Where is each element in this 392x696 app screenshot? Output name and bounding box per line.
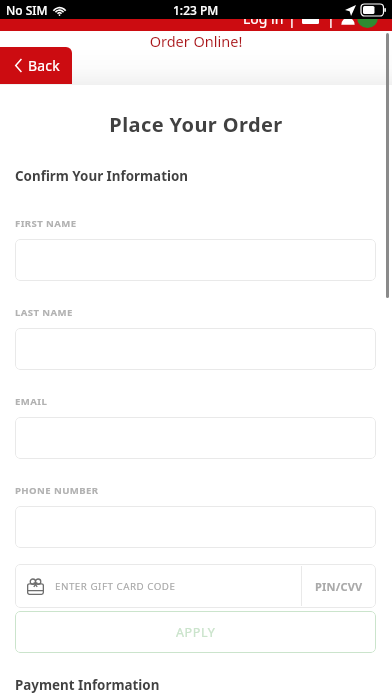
staticText: FIRST NAME (15, 217, 77, 230)
staticText: | (288, 9, 296, 28)
button[interactable]: PIN/CVV (301, 564, 376, 608)
staticText: LAST NAME (15, 306, 73, 319)
button[interactable]: Account (341, 10, 355, 24)
staticText: PIN/CVV (315, 579, 363, 594)
button[interactable]: LAST NAME (15, 328, 376, 370)
button[interactable]: Shopping cart (302, 10, 319, 24)
staticText: APPLY (176, 624, 216, 641)
button[interactable]: PHONE NUMBER (15, 506, 376, 548)
staticText: EMAIL (15, 395, 48, 408)
button[interactable]: Menu (357, 7, 378, 28)
staticText: No SIM (6, 2, 48, 18)
staticText: Place Your Order (0, 111, 392, 138)
button[interactable]: ENTER GIFT CARD CODE (15, 564, 301, 608)
staticText: 1:23 PM (173, 2, 219, 18)
staticText: Payment Information (15, 676, 160, 694)
staticText: PHONE NUMBER (15, 484, 99, 497)
button[interactable]: FIRST NAME (15, 239, 376, 281)
staticText: Back (28, 56, 60, 75)
button[interactable]: EMAIL (15, 417, 376, 459)
staticText: ENTER GIFT CARD CODE (55, 580, 176, 593)
staticText: | (327, 9, 335, 28)
staticText: Order Online! (0, 31, 392, 51)
staticText: Confirm Your Information (15, 167, 189, 185)
button[interactable]: APPLY (15, 611, 376, 653)
button[interactable]: Back (0, 47, 72, 84)
button[interactable]: Log in (243, 9, 284, 28)
